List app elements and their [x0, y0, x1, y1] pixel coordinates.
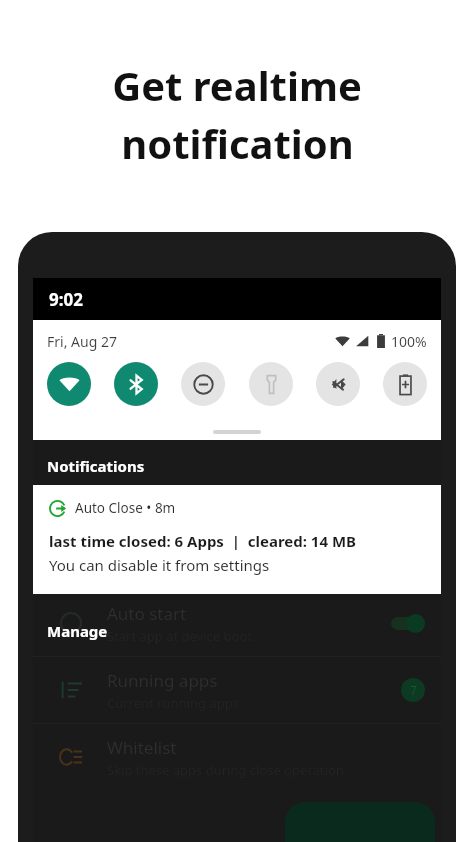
staticText: Get realtime — [112, 58, 362, 112]
staticText: Running apps — [107, 669, 218, 692]
staticText: You can disable it from settings — [49, 555, 270, 575]
button[interactable]: Running apps — [33, 657, 441, 723]
staticText: Fri, Aug 27 — [47, 332, 117, 351]
staticText: Manage — [47, 621, 108, 641]
button[interactable]: Quick setting toggle — [114, 362, 158, 406]
staticText: Used 1.05GB/1.95GB — [125, 378, 441, 398]
staticText: Auto start — [107, 602, 187, 625]
button[interactable]: Quick setting toggle — [383, 362, 427, 406]
button[interactable]: Quick setting toggle — [249, 362, 293, 406]
button[interactable]: Auto start toggle — [381, 612, 425, 634]
staticText: 100% — [391, 332, 427, 351]
button[interactable]: Auto Close • 8m — [33, 485, 441, 594]
button[interactable]: Quick setting toggle — [47, 362, 91, 406]
button[interactable]: Whitelist — [33, 724, 441, 790]
staticText: 9:02 — [49, 288, 83, 311]
staticText: Notifications — [47, 456, 145, 476]
staticText: Whitelist — [107, 736, 177, 759]
staticText: 7 — [410, 682, 417, 698]
button[interactable]: Auto start — [33, 590, 441, 656]
button[interactable]: Quick setting toggle — [316, 362, 360, 406]
staticText: last time closed: 6 Apps | cleared: 14 M… — [49, 531, 357, 551]
button[interactable]: Quick setting toggle — [181, 362, 225, 406]
staticText: notification — [121, 116, 354, 170]
staticText: Auto Close • 8m — [75, 499, 176, 517]
